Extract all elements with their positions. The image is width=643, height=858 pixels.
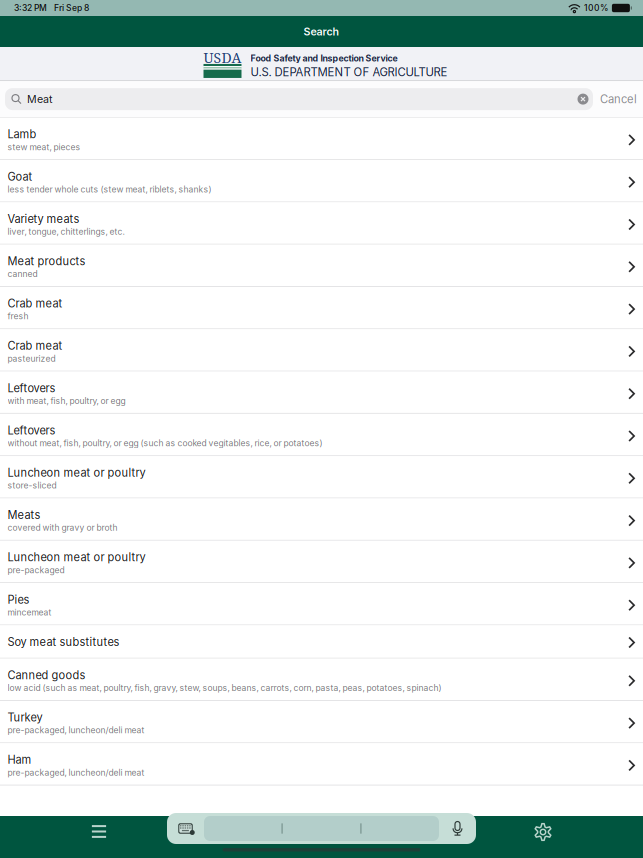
staticText: Meat products xyxy=(7,254,85,268)
staticText: Variety meats xyxy=(7,212,79,226)
button[interactable]: Pies xyxy=(0,583,643,625)
button[interactable]: Menu xyxy=(69,816,129,858)
button[interactable]: Crab meat xyxy=(0,329,643,372)
staticText: canned xyxy=(7,269,37,279)
button[interactable]: Luncheon meat or poultry xyxy=(0,541,643,583)
staticText: fresh xyxy=(7,311,28,321)
staticText: Crab meat xyxy=(7,339,62,352)
staticText: Luncheon meat or poultry xyxy=(7,466,145,479)
button[interactable]: Dictate xyxy=(439,813,476,844)
staticText: Canned goods xyxy=(7,668,85,682)
staticText: with meat, fish, poultry, or egg xyxy=(7,396,125,406)
button[interactable]: Lamb xyxy=(0,118,643,160)
staticText: Cancel xyxy=(600,92,637,106)
button[interactable]: Cancel xyxy=(593,86,643,112)
staticText: liver, tongue, chitterlings, etc. xyxy=(7,226,124,237)
button[interactable]: Ham xyxy=(0,743,643,786)
button[interactable]: Canned goods xyxy=(0,659,643,701)
staticText: Leftovers xyxy=(7,381,55,395)
button[interactable]: Meats xyxy=(0,498,643,541)
staticText: stew meat, pieces xyxy=(7,142,80,152)
staticText: Meats xyxy=(7,508,40,522)
staticText: pre-packaged xyxy=(7,565,64,575)
staticText: Goat xyxy=(7,170,32,183)
staticText: store-sliced xyxy=(7,480,56,491)
staticText: Search xyxy=(303,25,339,38)
staticText: 3:32 PM xyxy=(14,3,47,13)
staticText: Pies xyxy=(7,593,29,606)
button[interactable]: Turkey xyxy=(0,701,643,743)
staticText: Luncheon meat or poultry xyxy=(7,551,145,564)
staticText: 100% xyxy=(584,3,608,13)
button[interactable]: Leftovers xyxy=(0,372,643,414)
button[interactable]: Show keyboard xyxy=(167,813,204,844)
staticText: Leftovers xyxy=(7,424,55,437)
staticText: pre-packaged, luncheon/deli meat xyxy=(7,767,144,778)
staticText: low acid (such as meat, poultry, fish, g… xyxy=(7,683,441,693)
staticText: Soy meat substitutes xyxy=(7,635,119,649)
staticText: less tender whole cuts (stew meat, rible… xyxy=(7,184,211,194)
staticText: Ham xyxy=(7,753,31,766)
staticText: Crab meat xyxy=(7,297,62,310)
button[interactable]: Variety meats xyxy=(0,202,643,245)
staticText: Fri Sep 8 xyxy=(54,3,89,13)
staticText: U.S. DEPARTMENT OF AGRICULTURE xyxy=(250,65,447,79)
button[interactable]: Meat products xyxy=(0,245,643,287)
staticText: mincemeat xyxy=(7,607,51,617)
staticText: covered with gravy or broth xyxy=(7,523,117,533)
staticText: USDA xyxy=(203,48,241,67)
button[interactable]: Settings xyxy=(513,816,573,858)
staticText: without meat, fish, poultry, or egg (suc… xyxy=(7,438,322,448)
staticText: Lamb xyxy=(7,128,36,141)
staticText: Food Safety and Inspection Service xyxy=(250,53,397,63)
button[interactable]: Crab meat xyxy=(0,287,643,329)
staticText: pasteurized xyxy=(7,353,55,364)
staticText: Turkey xyxy=(7,711,42,724)
staticText: Meat xyxy=(27,93,52,105)
staticText: pre-packaged, luncheon/deli meat xyxy=(7,725,144,735)
button[interactable]: Goat xyxy=(0,160,643,202)
button[interactable]: Leftovers xyxy=(0,414,643,456)
button[interactable]: Soy meat substitutes xyxy=(0,625,643,659)
button[interactable]: Luncheon meat or poultry xyxy=(0,456,643,498)
